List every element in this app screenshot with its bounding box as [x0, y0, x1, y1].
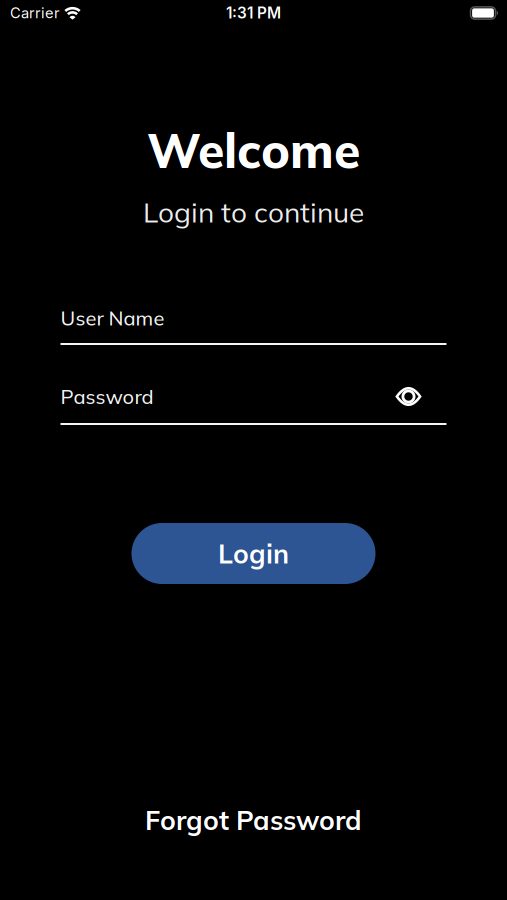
button[interactable]: Forgot Password: [145, 805, 362, 835]
button[interactable]: Login: [131, 523, 375, 584]
button[interactable]: User Name: [60, 305, 446, 345]
staticText: Carrier: [10, 4, 60, 22]
button[interactable]: Show password: [395, 386, 446, 406]
staticText: Login: [218, 537, 289, 570]
staticText: 1:31 PM: [226, 4, 281, 22]
staticText: User Name: [60, 305, 164, 331]
staticText: Forgot Password: [145, 803, 362, 837]
staticText: Welcome: [147, 120, 360, 180]
staticText: Login to continue: [143, 194, 364, 229]
staticText: Password: [60, 384, 153, 409]
